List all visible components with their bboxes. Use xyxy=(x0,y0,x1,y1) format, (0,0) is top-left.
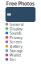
staticText: Free Photos xyxy=(6,0,35,7)
staticText: Privacy xyxy=(10,35,23,40)
staticText: Battery xyxy=(10,43,23,49)
staticText: Siri xyxy=(10,57,16,62)
staticText: General xyxy=(10,21,24,27)
staticText: Storage xyxy=(10,48,23,53)
staticText: Wallet xyxy=(10,52,21,58)
staticText: Screen xyxy=(10,39,22,44)
staticText: Display xyxy=(10,26,23,31)
staticText: Sounds xyxy=(10,30,22,36)
